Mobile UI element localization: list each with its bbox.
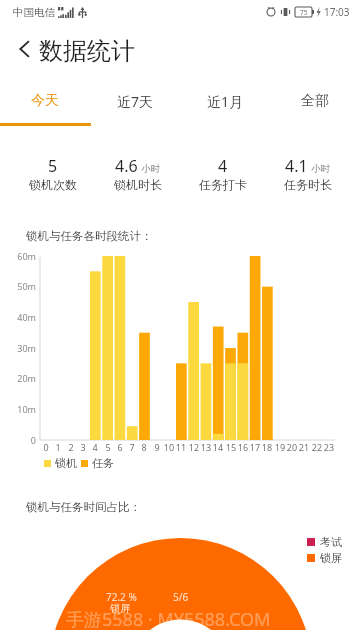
button[interactable]: 近7天 — [90, 88, 180, 126]
staticText: 17 — [246, 441, 264, 453]
staticText: 数据统计 — [39, 36, 135, 66]
staticText: 今天 — [31, 92, 59, 110]
staticText: 7 — [123, 441, 141, 453]
staticText: 锁机与任务各时段统计： — [26, 229, 153, 243]
staticText: 中国电信 — [13, 6, 55, 19]
staticText: 20 — [283, 441, 301, 453]
staticText: 5 — [99, 441, 117, 453]
button[interactable]: 近1月 — [180, 88, 270, 126]
staticText: 2 — [62, 441, 80, 453]
staticText: 5 — [48, 155, 58, 177]
staticText: 锁屏 — [320, 551, 342, 565]
staticText: 近1月 — [207, 92, 244, 111]
staticText: 72.2 % — [106, 590, 137, 604]
staticText: 4 — [218, 155, 228, 177]
button[interactable]: 今天 — [0, 88, 90, 126]
staticText: 8 — [135, 441, 153, 453]
staticText: 18 — [258, 441, 276, 453]
staticText: 10 — [160, 441, 178, 453]
staticText: 19 — [271, 441, 289, 453]
staticText: 15 — [222, 441, 240, 453]
staticText: 21 — [295, 441, 313, 453]
staticText: 4 — [86, 441, 104, 453]
staticText: 小时 — [141, 163, 160, 175]
staticText: 锁机时长 — [114, 177, 162, 192]
staticText: 锁屏 — [110, 602, 130, 615]
staticText: 锁机次数 — [29, 177, 77, 192]
staticText: 手游5588 · MY5588.COM — [66, 607, 271, 632]
staticText: 4.1 — [285, 155, 308, 177]
staticText: 近7天 — [117, 92, 154, 111]
staticText: 任务 — [92, 456, 114, 470]
staticText: 22 — [308, 441, 326, 453]
staticText: 30m — [17, 342, 36, 354]
staticText: 13 — [197, 441, 215, 453]
staticText: 考试 — [320, 535, 342, 549]
staticText: 16 — [234, 441, 252, 453]
staticText: 11 — [172, 441, 190, 453]
staticText: 全部 — [301, 92, 329, 110]
staticText: 4.6 — [115, 155, 138, 177]
staticText: 75 — [300, 8, 308, 17]
staticText: 17:03 — [324, 5, 350, 19]
staticText: 9 — [148, 441, 166, 453]
staticText: 10m — [17, 403, 36, 415]
staticText: 6 — [111, 441, 129, 453]
staticText: 60m — [17, 250, 36, 262]
staticText: 锁机 — [55, 456, 77, 470]
button[interactable]: Back — [6, 30, 44, 68]
staticText: 1 — [49, 441, 67, 453]
staticText: 0 — [37, 441, 55, 453]
staticText: 23 — [320, 441, 338, 453]
staticText: 12 — [185, 441, 203, 453]
staticText: 40m — [17, 311, 36, 323]
staticText: 小时 — [311, 163, 330, 175]
staticText: 任务时长 — [284, 177, 332, 192]
staticText: 0 — [30, 434, 36, 446]
staticText: 5/6 — [173, 590, 189, 604]
staticText: 3 — [74, 441, 92, 453]
staticText: 14 — [209, 441, 227, 453]
staticText: 20m — [17, 372, 36, 384]
button[interactable]: 全部 — [270, 88, 360, 126]
staticText: 锁机与任务时间占比： — [26, 500, 141, 514]
staticText: 任务打卡 — [199, 177, 247, 192]
staticText: 50m — [17, 280, 36, 292]
